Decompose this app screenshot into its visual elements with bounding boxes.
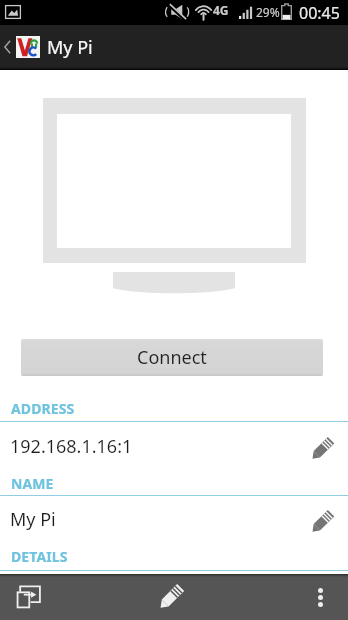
button[interactable]: Back [0,25,15,69]
staticText: 00:45 [299,2,340,24]
staticText: 29% [256,4,280,20]
staticText: Connect [137,345,207,370]
staticText: 4G [213,2,229,18]
staticText: My Pi [47,35,93,60]
staticText: DETAILS [11,547,68,566]
staticText: My Pi [10,507,56,532]
button[interactable]: Duplicate [4,574,54,620]
button[interactable]: My Pi [0,496,348,543]
button[interactable]: Edit [148,572,198,618]
staticText: ADDRESS [11,399,75,418]
button[interactable]: Connect [21,339,323,376]
button[interactable]: 192.168.1.16:1 [0,422,348,471]
staticText: NAME [11,474,54,493]
staticText: 192.168.1.16:1 [10,434,133,459]
button[interactable]: More options [298,574,342,620]
